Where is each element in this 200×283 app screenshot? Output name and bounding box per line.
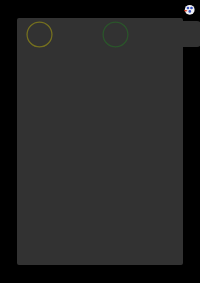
- button[interactable]: Secondary action: [102, 21, 129, 48]
- button[interactable]: Primary action: [26, 21, 53, 48]
- button[interactable]: App badge: [183, 3, 197, 17]
